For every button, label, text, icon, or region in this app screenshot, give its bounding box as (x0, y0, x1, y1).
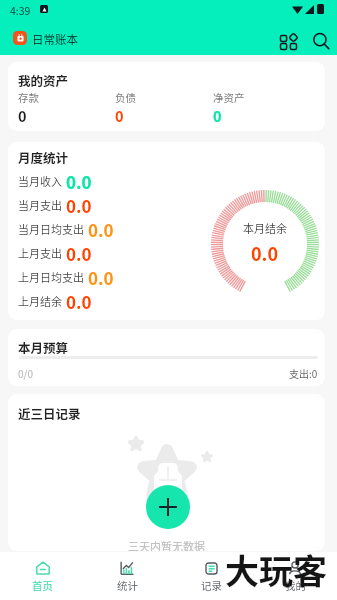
button[interactable]: 记录 (169, 552, 253, 600)
staticText: 当月日均支出 (18, 221, 84, 237)
button[interactable]: 统计 (85, 552, 169, 600)
staticText: 当月收入 (18, 173, 62, 189)
staticText: 支出:0 (289, 366, 318, 380)
staticText: 本月结余 (243, 220, 287, 236)
staticText: 本月预算 (18, 338, 69, 356)
staticText: 0/0 (18, 366, 34, 380)
staticText: 净资产 (213, 90, 245, 105)
staticText: 三天内暂无数据 (128, 538, 205, 551)
staticText: 我的 (285, 578, 306, 593)
staticText: 0.0 (88, 265, 114, 289)
staticText: 0.0 (66, 289, 92, 313)
button[interactable]: Add record (146, 485, 190, 529)
staticText: 0.0 (88, 217, 114, 241)
staticText: 0.0 (251, 240, 279, 266)
staticText: 0 (213, 105, 222, 126)
button[interactable]: Categories (272, 25, 304, 57)
staticText: 负债 (115, 90, 136, 105)
staticText: 上月日均支出 (18, 269, 84, 285)
staticText: 0.0 (66, 241, 92, 265)
staticText: 0.0 (66, 193, 92, 217)
staticText: 4:39 (10, 3, 31, 18)
button[interactable]: 首页 (0, 552, 85, 600)
staticText: 首页 (32, 578, 53, 593)
staticText: 0 (18, 105, 27, 126)
staticText: 上月结余 (18, 293, 62, 309)
staticText: 0 (115, 105, 124, 126)
staticText: 存款 (18, 90, 39, 105)
staticText: 大玩客 (225, 545, 327, 594)
staticText: 记录 (201, 578, 222, 593)
staticText: 日常账本 (32, 31, 78, 48)
button[interactable]: Search (305, 25, 337, 57)
button[interactable]: 我的 (253, 552, 337, 600)
staticText: 统计 (117, 578, 138, 593)
staticText: 当月支出 (18, 197, 62, 213)
staticText: 上月支出 (18, 245, 62, 261)
staticText: 0.0 (66, 169, 92, 193)
staticText: 月度统计 (18, 148, 69, 166)
staticText: 近三日记录 (18, 404, 81, 422)
staticText: 我的资产 (18, 71, 69, 89)
